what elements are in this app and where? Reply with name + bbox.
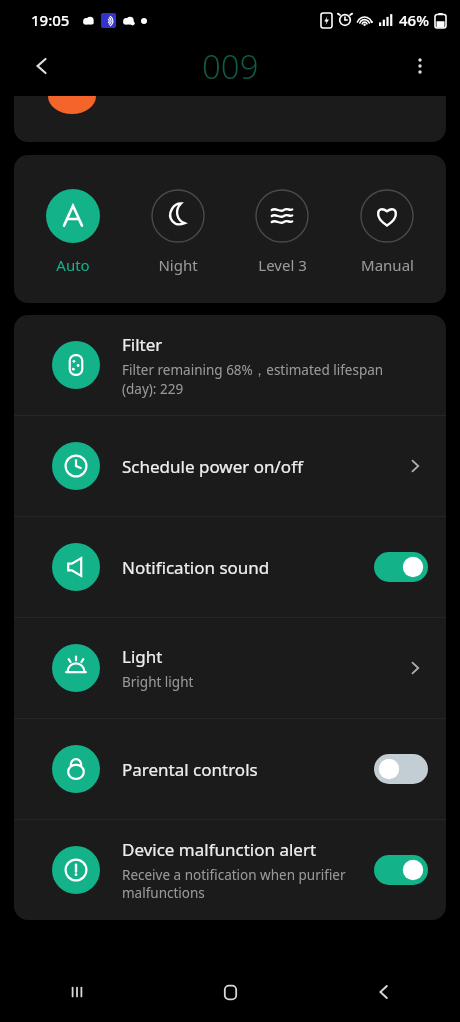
staticText: 009 [202, 44, 259, 89]
button[interactable]: Back [307, 962, 460, 1022]
button[interactable]: Manual [341, 189, 433, 275]
button[interactable]: Auto [27, 189, 119, 275]
button[interactable]: On [374, 855, 428, 885]
staticText: Filter [122, 333, 163, 356]
staticText: Level 3 [258, 255, 307, 275]
staticText: Bright light [122, 673, 194, 691]
button[interactable]: Recents [0, 962, 154, 1022]
staticText: Auto [56, 255, 90, 275]
staticText: Filter remaining 68%，estimated lifespan … [122, 361, 384, 398]
staticText: 19:05 [31, 10, 70, 30]
staticText: Notification sound [122, 556, 270, 579]
staticText: Receive a notification when purifier mal… [122, 866, 346, 902]
button[interactable]: Home [154, 962, 307, 1022]
staticText: Manual [361, 255, 414, 275]
button[interactable]: More options [400, 46, 440, 86]
button[interactable]: Night [132, 189, 224, 275]
button[interactable]: Parental controls [14, 719, 446, 819]
staticText: Parental controls [122, 758, 258, 781]
button[interactable]: Schedule power on/off [14, 416, 446, 516]
button[interactable]: Notification sound [14, 517, 446, 617]
button[interactable]: Light [14, 618, 446, 718]
staticText: 46% [399, 10, 429, 30]
staticText: Night [158, 255, 198, 275]
button[interactable]: Level 3 [236, 189, 328, 275]
button[interactable]: Back [22, 46, 62, 86]
button[interactable]: Off [374, 754, 428, 784]
button[interactable] [14, 96, 446, 142]
staticText: Schedule power on/off [122, 455, 303, 478]
button[interactable]: On [374, 552, 428, 582]
button[interactable]: Device malfunction alert [14, 820, 446, 920]
button[interactable]: Filter [14, 315, 446, 415]
staticText: Device malfunction alert [122, 838, 317, 861]
staticText: Light [122, 645, 163, 668]
